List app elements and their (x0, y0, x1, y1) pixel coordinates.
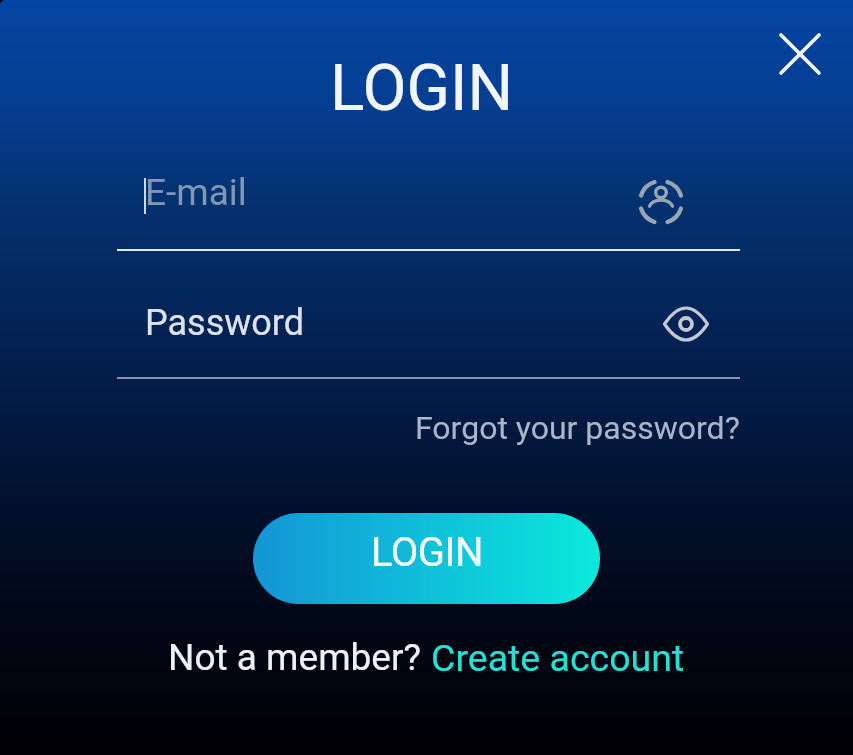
button[interactable]: LOGIN (253, 513, 600, 604)
staticText: Not a member? (168, 636, 422, 679)
button[interactable] (770, 24, 830, 84)
button[interactable]: Forgot your password? (415, 409, 740, 447)
button[interactable]: Password (117, 295, 740, 379)
button[interactable]: E-mail (117, 165, 740, 251)
staticText: E-mail (145, 171, 247, 214)
staticText: LOGIN (330, 51, 514, 126)
button[interactable]: Create account (431, 636, 685, 680)
staticText: Password (145, 302, 305, 344)
staticText: LOGIN (371, 529, 483, 576)
